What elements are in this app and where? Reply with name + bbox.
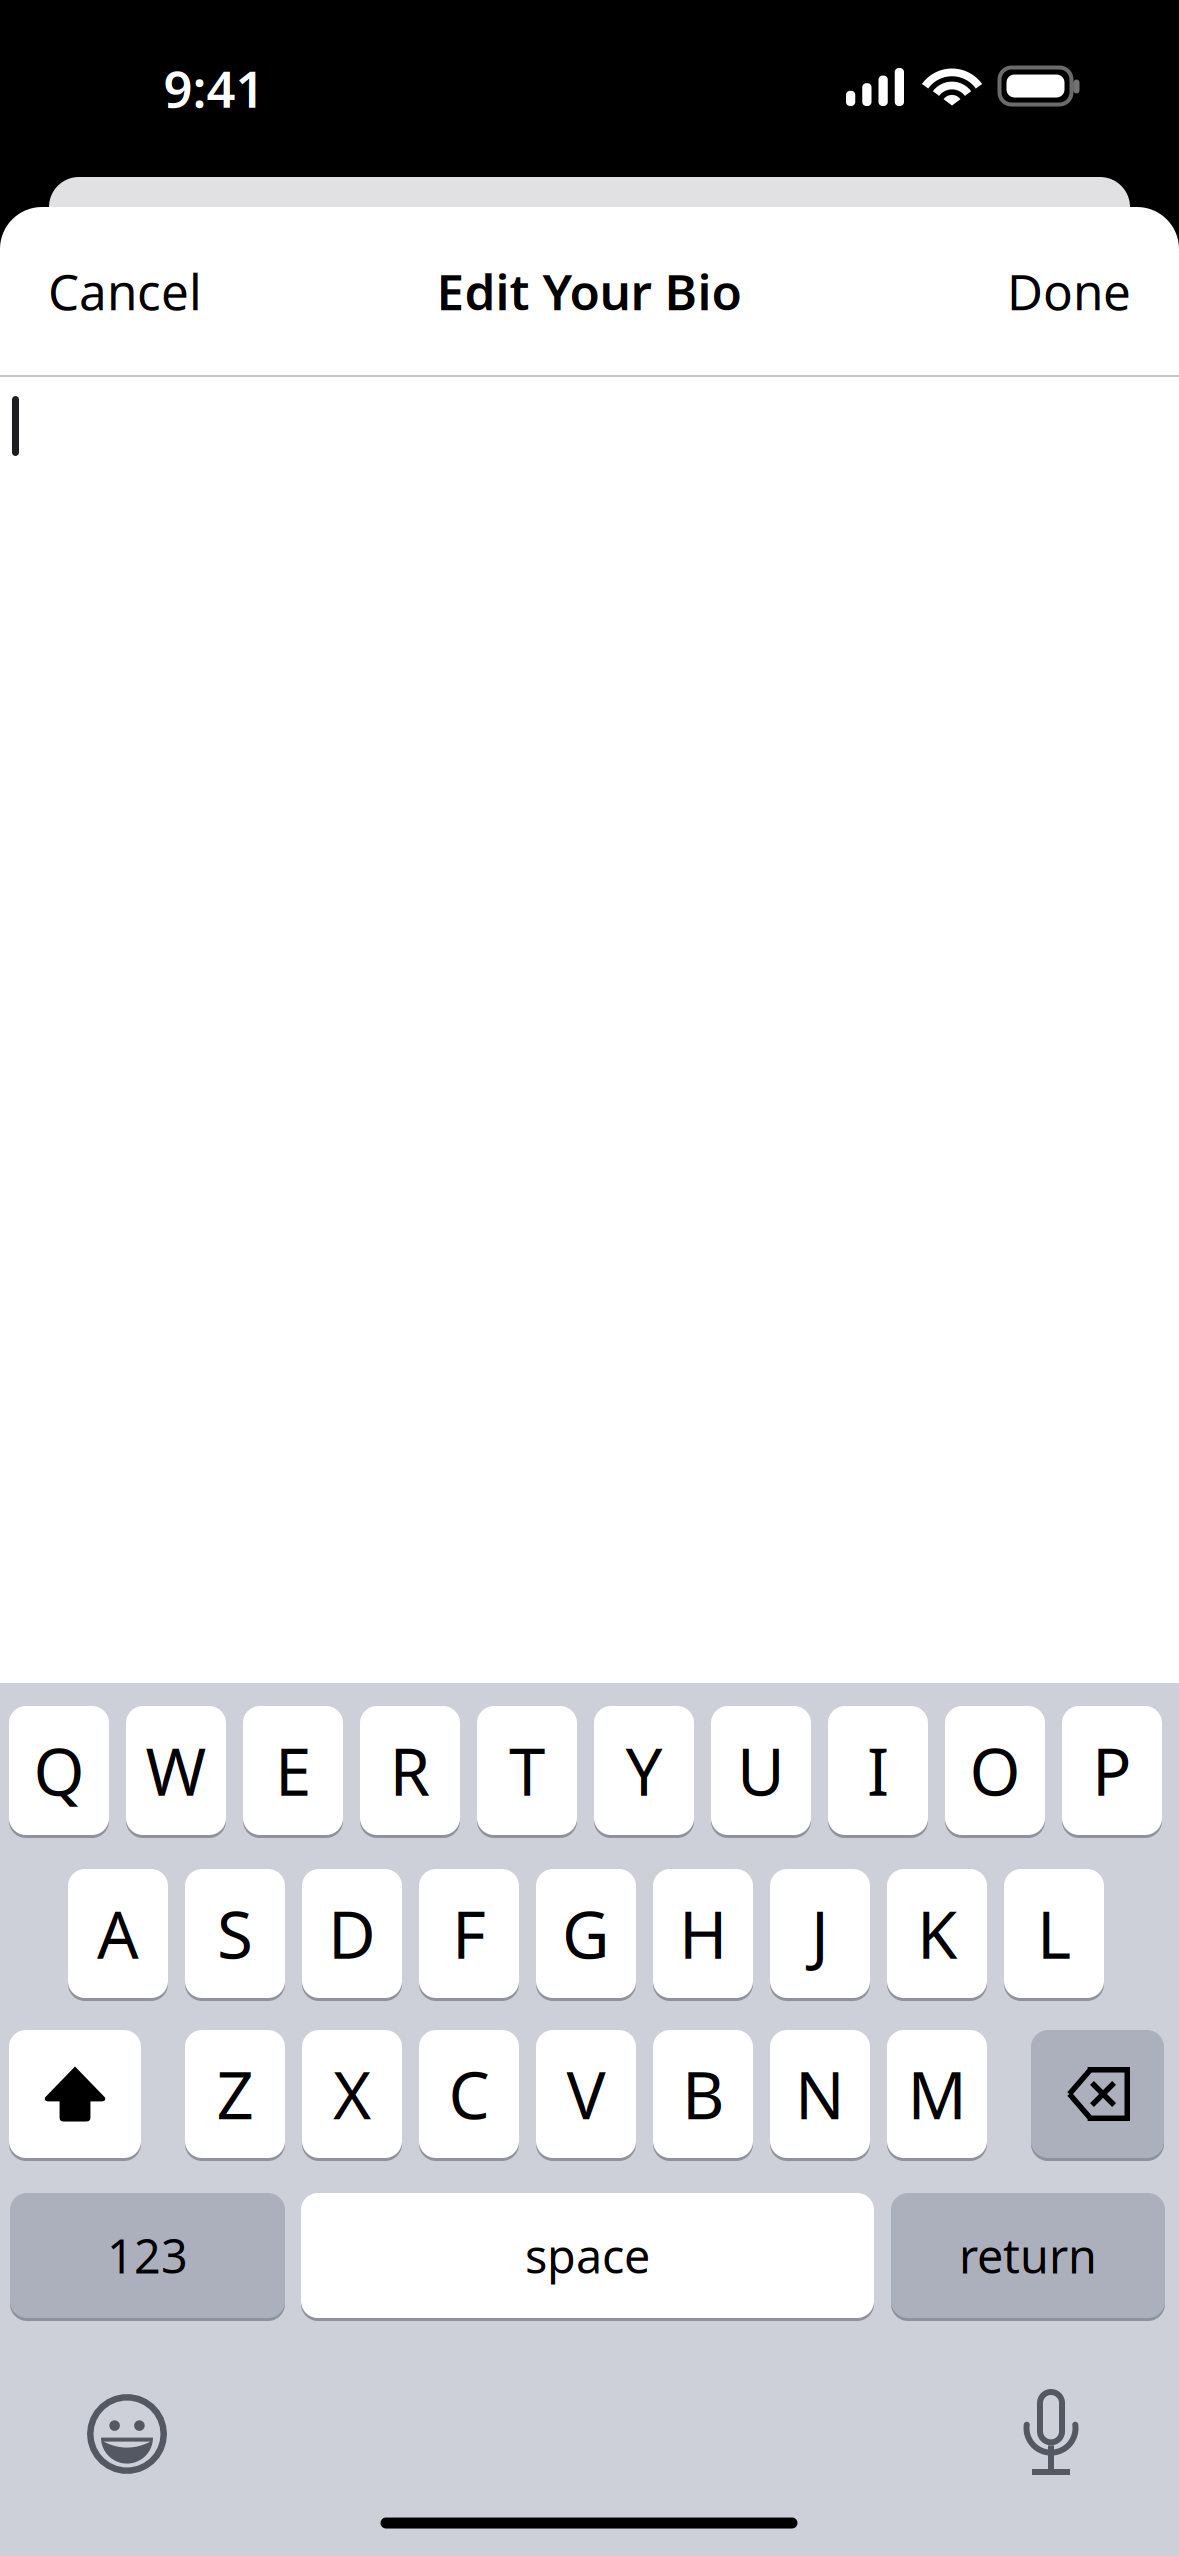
staticText: R xyxy=(389,1727,430,1814)
staticText: X xyxy=(333,2051,371,2137)
staticText: 123 xyxy=(107,2224,188,2286)
button[interactable]: O xyxy=(945,1706,1045,1838)
button[interactable]: S xyxy=(185,1869,285,2001)
button[interactable]: L xyxy=(1004,1869,1104,2001)
button[interactable]: Y xyxy=(594,1706,694,1838)
staticText: N xyxy=(795,2051,845,2137)
staticText: Z xyxy=(216,2051,253,2137)
staticText: K xyxy=(917,1890,957,1977)
button[interactable]: Q xyxy=(9,1706,109,1838)
staticText: B xyxy=(682,2051,724,2137)
staticText: H xyxy=(679,1890,727,1977)
staticText: return xyxy=(959,2224,1097,2286)
staticText: Edit Your Bio xyxy=(436,258,741,324)
button[interactable]: space xyxy=(301,2193,874,2321)
staticText: Y xyxy=(625,1727,662,1814)
button[interactable]: H xyxy=(653,1869,753,2001)
staticText: S xyxy=(217,1890,253,1977)
staticText: F xyxy=(452,1890,486,1977)
button[interactable]: V xyxy=(536,2030,636,2161)
staticText: C xyxy=(448,2051,489,2137)
button[interactable]: J xyxy=(770,1869,870,2001)
button[interactable]: R xyxy=(360,1706,460,1838)
staticText: U xyxy=(737,1727,785,1814)
button[interactable]: D xyxy=(302,1869,402,2001)
staticText: A xyxy=(97,1890,139,1977)
button[interactable]: X xyxy=(302,2030,402,2161)
button[interactable]: N xyxy=(770,2030,870,2161)
button[interactable]: B xyxy=(653,2030,753,2161)
staticText: Q xyxy=(33,1727,84,1814)
button[interactable]: M xyxy=(887,2030,987,2161)
button[interactable]: Shift xyxy=(9,2030,141,2161)
staticText: O xyxy=(969,1727,1020,1814)
staticText: D xyxy=(328,1890,376,1977)
button[interactable]: W xyxy=(126,1706,226,1838)
button[interactable]: Emoji keyboard xyxy=(87,2394,167,2474)
button[interactable]: Z xyxy=(185,2030,285,2161)
button[interactable]: K xyxy=(887,1869,987,2001)
staticText: I xyxy=(867,1727,889,1814)
staticText: L xyxy=(1037,1890,1071,1977)
staticText: Done xyxy=(1007,258,1131,324)
staticText: space xyxy=(525,2224,650,2286)
button[interactable]: C xyxy=(419,2030,519,2161)
staticText: E xyxy=(275,1727,311,1814)
staticText: V xyxy=(566,2051,605,2137)
button[interactable]: I xyxy=(828,1706,928,1838)
button[interactable]: Delete xyxy=(1031,2030,1164,2161)
staticText: W xyxy=(145,1727,206,1814)
button[interactable]: E xyxy=(243,1706,343,1838)
button[interactable]: 123 xyxy=(10,2193,285,2321)
staticText: J xyxy=(811,1890,829,1977)
button[interactable]: G xyxy=(536,1869,636,2001)
button[interactable]: T xyxy=(477,1706,577,1838)
button[interactable]: F xyxy=(419,1869,519,2001)
button[interactable]: A xyxy=(68,1869,168,2001)
staticText: M xyxy=(907,2051,966,2137)
staticText: T xyxy=(509,1727,545,1814)
button[interactable]: Done xyxy=(931,236,1131,346)
staticText: 9:41 xyxy=(163,54,264,122)
button[interactable]: Cancel xyxy=(48,236,292,346)
staticText: G xyxy=(562,1890,610,1977)
staticText: P xyxy=(1092,1727,1132,1814)
button[interactable]: return xyxy=(891,2193,1165,2321)
staticText: Cancel xyxy=(48,258,202,324)
button[interactable]: U xyxy=(711,1706,811,1838)
button[interactable]: Dictate xyxy=(1023,2389,1078,2475)
button[interactable]: P xyxy=(1062,1706,1162,1838)
